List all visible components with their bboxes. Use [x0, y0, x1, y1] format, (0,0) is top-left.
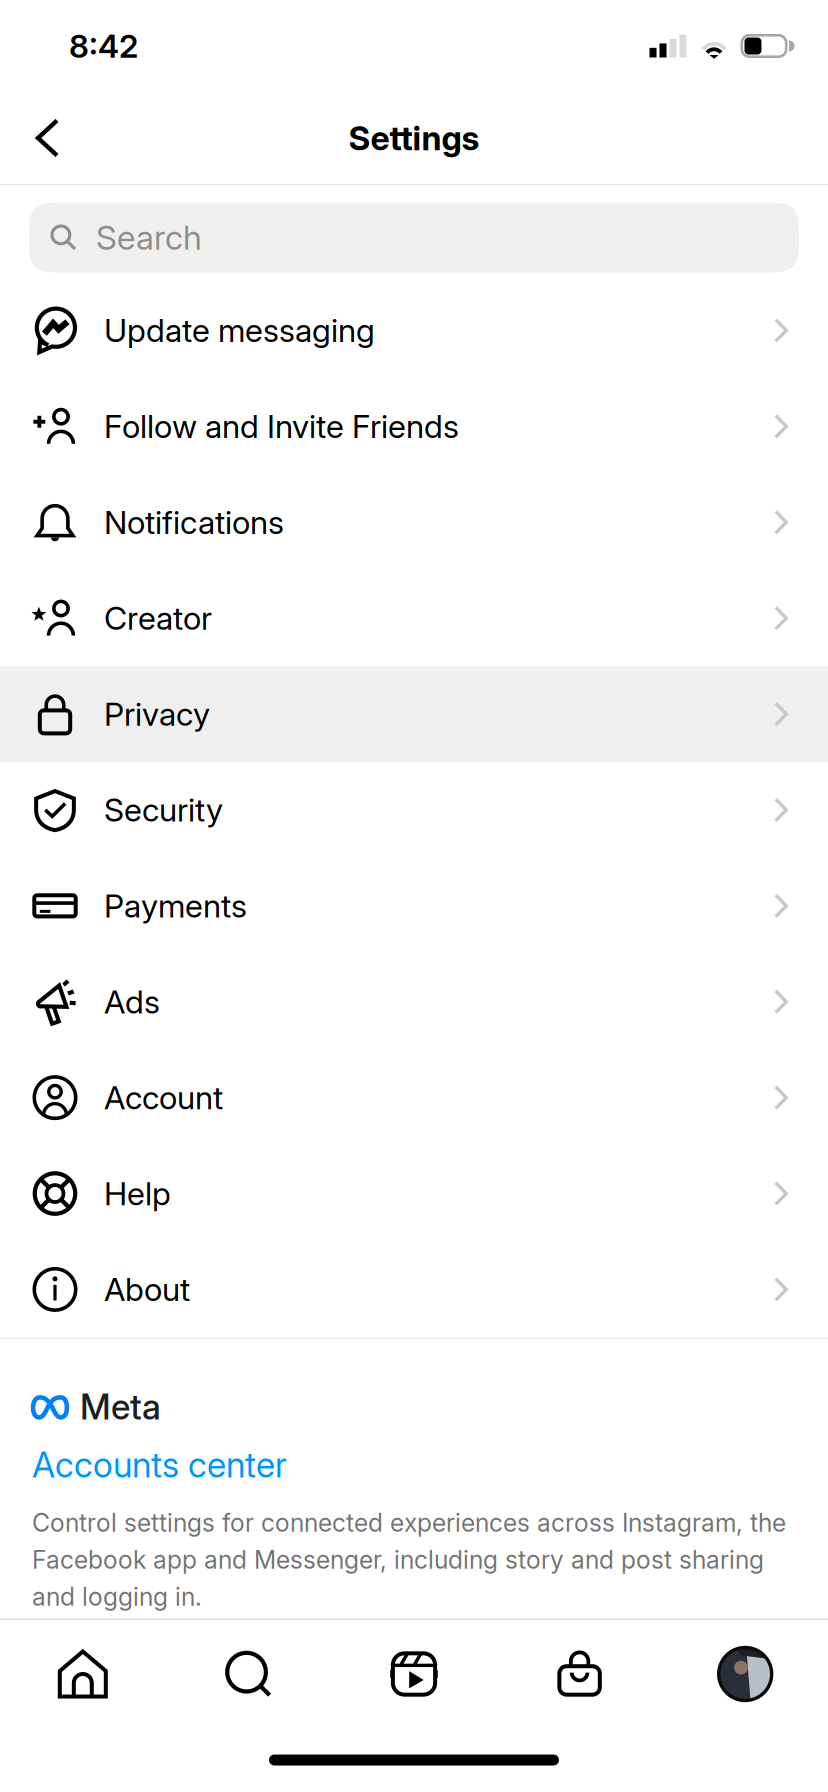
staticText: Security	[104, 791, 223, 829]
staticText: Search	[96, 217, 202, 258]
staticText: Control settings for connected experienc…	[32, 1508, 786, 1612]
button[interactable]: Shop	[497, 1651, 662, 1697]
button[interactable]: Notifications	[0, 474, 828, 570]
button[interactable]: Help	[0, 1146, 828, 1241]
staticText: 8:42	[69, 27, 138, 65]
staticText: Account	[104, 1078, 223, 1117]
staticText: Payments	[104, 886, 247, 925]
staticText: Meta	[80, 1386, 161, 1428]
button[interactable]: Home	[0, 1649, 166, 1699]
button[interactable]: Follow and Invite Friends	[0, 378, 828, 474]
button[interactable]: Account	[0, 1050, 828, 1146]
button[interactable]: Ads	[0, 954, 828, 1050]
staticText: Creator	[104, 599, 212, 637]
button[interactable]: About	[0, 1241, 828, 1337]
button[interactable]: Profile	[662, 1647, 828, 1700]
staticText: Help	[104, 1174, 171, 1213]
button[interactable]: Accounts center	[32, 1444, 287, 1486]
staticText: About	[104, 1270, 190, 1309]
staticText: Accounts center	[32, 1444, 287, 1486]
staticText: Privacy	[104, 695, 210, 733]
button[interactable]: Search	[166, 1651, 331, 1697]
button[interactable]: Reels	[331, 1650, 497, 1698]
button[interactable]: Payments	[0, 858, 828, 954]
button[interactable]: Security	[0, 762, 828, 858]
button[interactable]: Creator	[0, 570, 828, 666]
staticText: Ads	[104, 982, 160, 1021]
button[interactable]: Privacy	[0, 666, 828, 762]
button[interactable]: Update messaging	[0, 282, 828, 378]
staticText: Update messaging	[104, 311, 375, 350]
button[interactable]: Back	[0, 94, 85, 181]
staticText: Follow and Invite Friends	[104, 407, 459, 446]
staticText: Settings	[348, 118, 479, 158]
staticText: Notifications	[104, 503, 284, 542]
